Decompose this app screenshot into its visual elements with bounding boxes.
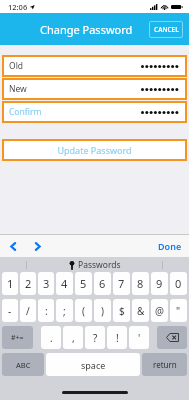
staticText: : bbox=[45, 304, 48, 318]
staticText: #+= bbox=[11, 333, 24, 343]
button[interactable]: ! bbox=[107, 326, 127, 349]
staticText: $ bbox=[119, 304, 125, 318]
button[interactable]: 5 bbox=[75, 272, 92, 295]
button[interactable]: , bbox=[63, 326, 83, 349]
button[interactable]: Update Password bbox=[2, 139, 187, 161]
staticText: . bbox=[50, 331, 53, 345]
button[interactable]: ABC bbox=[2, 353, 44, 376]
staticText: , bbox=[72, 331, 75, 345]
button[interactable]: ; bbox=[56, 299, 73, 322]
button[interactable]: Next field bbox=[31, 240, 44, 253]
button[interactable]: Backspace bbox=[157, 326, 187, 349]
button[interactable]: Previous field bbox=[7, 240, 20, 253]
staticText: 6 bbox=[99, 276, 106, 291]
staticText: New bbox=[9, 83, 27, 95]
staticText: Passwords bbox=[78, 259, 121, 271]
button[interactable]: CANCEL bbox=[149, 21, 183, 38]
staticText: & bbox=[137, 304, 145, 318]
button[interactable]: @ bbox=[151, 299, 168, 322]
button[interactable]: ? bbox=[85, 326, 105, 349]
staticText: ; bbox=[63, 304, 66, 318]
staticText: ABC bbox=[16, 360, 31, 370]
staticText: 0 bbox=[175, 276, 182, 291]
staticText: " bbox=[176, 304, 181, 318]
button[interactable]: 8 bbox=[132, 272, 149, 295]
button[interactable]: return bbox=[142, 353, 187, 376]
button[interactable]: - bbox=[2, 299, 18, 322]
button[interactable]: ' bbox=[129, 326, 149, 349]
button[interactable]: / bbox=[20, 299, 36, 322]
staticText: CANCEL bbox=[154, 25, 179, 34]
staticText: - bbox=[8, 304, 12, 318]
button[interactable]: $ bbox=[113, 299, 130, 322]
button[interactable]: 6 bbox=[94, 272, 111, 295]
staticText: Update Password bbox=[57, 144, 132, 156]
staticText: 1 bbox=[7, 276, 14, 291]
staticText: Old bbox=[9, 60, 24, 72]
button[interactable]: 7 bbox=[113, 272, 130, 295]
staticText: 2 bbox=[25, 276, 32, 291]
button[interactable]: 9 bbox=[151, 272, 168, 295]
button[interactable]: 4 bbox=[56, 272, 73, 295]
button[interactable]: space bbox=[46, 353, 140, 376]
button[interactable]: New bbox=[2, 78, 187, 100]
staticText: ' bbox=[138, 331, 141, 345]
button[interactable]: & bbox=[132, 299, 149, 322]
button[interactable]: #+= bbox=[2, 326, 33, 349]
staticText: Confirm bbox=[9, 106, 42, 118]
staticText: 5 bbox=[80, 276, 87, 291]
button[interactable]: 3 bbox=[38, 272, 54, 295]
staticText: @ bbox=[155, 304, 164, 318]
button[interactable]: Old bbox=[2, 55, 187, 77]
staticText: 9 bbox=[156, 276, 163, 291]
staticText: 8 bbox=[137, 276, 144, 291]
button[interactable]: Done bbox=[158, 240, 182, 252]
button[interactable]: 1 bbox=[2, 272, 18, 295]
staticText: 4 bbox=[61, 276, 68, 291]
staticText: 7 bbox=[118, 276, 125, 291]
staticText: Change Password bbox=[40, 22, 133, 37]
staticText: 12:06 bbox=[8, 2, 28, 12]
staticText: ! bbox=[116, 331, 119, 345]
button[interactable]: ( bbox=[75, 299, 92, 322]
button[interactable]: ) bbox=[94, 299, 111, 322]
button[interactable]: . bbox=[41, 326, 61, 349]
button[interactable]: 2 bbox=[20, 272, 36, 295]
staticText: Done bbox=[158, 240, 182, 252]
staticText: ) bbox=[101, 304, 104, 318]
button[interactable]: " bbox=[170, 299, 187, 322]
staticText: ? bbox=[93, 331, 98, 345]
staticText: return bbox=[153, 359, 177, 370]
staticText: ( bbox=[82, 304, 85, 318]
staticText: space bbox=[81, 359, 106, 371]
staticText: 3 bbox=[43, 276, 50, 291]
button[interactable]: : bbox=[38, 299, 54, 322]
button[interactable]: Confirm bbox=[2, 101, 187, 123]
button[interactable]: 0 bbox=[170, 272, 187, 295]
staticText: / bbox=[26, 304, 30, 318]
button[interactable]: Passwords bbox=[69, 259, 121, 271]
